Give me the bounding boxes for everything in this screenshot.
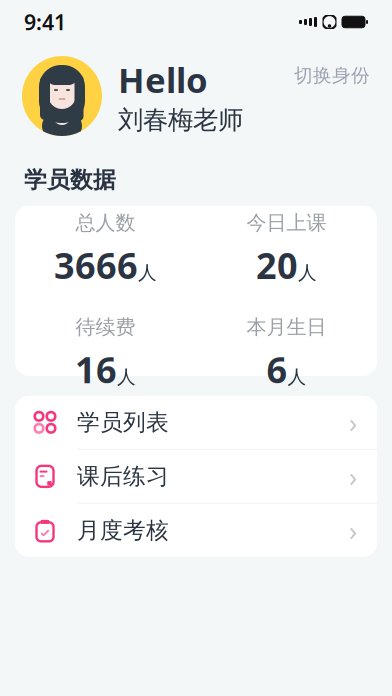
staticText: 人 (138, 261, 157, 284)
staticText: 月度考核 (77, 516, 169, 544)
staticText: › (349, 405, 357, 440)
staticText: 人 (298, 261, 317, 284)
staticText: 学员数据 (24, 166, 116, 194)
staticText: › (349, 513, 357, 548)
staticText: 刘春梅老师 (118, 104, 243, 136)
button[interactable]: 切换身份 (272, 60, 392, 91)
staticText: 总人数 (75, 210, 135, 235)
staticText: 9:41 (24, 8, 66, 36)
button[interactable]: 月度考核 (15, 504, 377, 557)
staticText: 切换身份 (294, 64, 370, 87)
staticText: 6 (266, 345, 287, 393)
staticText: 人 (287, 366, 306, 388)
button[interactable]: 学员列表 (15, 396, 377, 449)
staticText: › (349, 459, 357, 494)
staticText: 16 (75, 345, 117, 393)
staticText: 20 (256, 241, 298, 289)
staticText: 学员列表 (77, 408, 169, 436)
staticText: 本月生日 (246, 315, 326, 339)
staticText: 人 (117, 366, 136, 388)
staticText: 待续费 (75, 315, 135, 339)
button[interactable]: 课后练习 (15, 450, 377, 503)
staticText: 今日上课 (246, 210, 326, 235)
staticText: 课后练习 (77, 462, 169, 490)
staticText: Hello (118, 56, 208, 102)
staticText: 3666 (54, 241, 138, 289)
